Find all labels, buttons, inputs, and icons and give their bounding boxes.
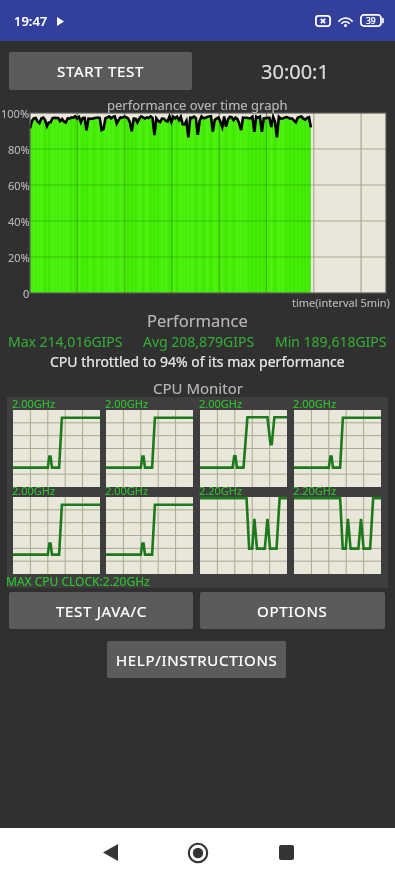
staticText: 2.00GHz (293, 396, 337, 411)
staticText: Max 214,016GIPS (8, 332, 123, 351)
staticText: 2.00GHz (199, 396, 243, 411)
staticText: Min 189,618GIPS (275, 332, 387, 351)
staticText: 80% (8, 142, 30, 157)
staticText: 100% (1, 106, 30, 121)
staticText: 20% (8, 250, 30, 265)
staticText: MAX CPU CLOCK:2.20GHz (6, 573, 150, 589)
button[interactable]: TEST JAVA/C (9, 592, 193, 629)
staticText: 19:47 (14, 12, 48, 30)
staticText: START TEST (57, 61, 144, 81)
staticText: 60% (8, 178, 30, 193)
staticText: 39 (366, 15, 376, 27)
button[interactable]: Home (154, 828, 242, 877)
staticText: 2.00GHz (12, 396, 56, 411)
staticText: 2.20GHz (199, 483, 243, 498)
button[interactable]: Recent apps (242, 828, 330, 877)
button[interactable]: Back (66, 828, 154, 877)
staticText: OPTIONS (257, 601, 328, 621)
button[interactable]: OPTIONS (200, 592, 385, 629)
staticText: 2.00GHz (12, 483, 56, 498)
staticText: CPU Monitor (153, 378, 243, 396)
staticText: HELP/INSTRUCTIONS (116, 650, 278, 670)
staticText: Performance (147, 309, 248, 331)
staticText: 40% (8, 214, 30, 229)
staticText: TEST JAVA/C (56, 601, 147, 621)
staticText: 30:00:1 (261, 58, 329, 85)
staticText: CPU throttled to 94% of its max performa… (50, 352, 345, 371)
staticText: 2.00GHz (105, 483, 149, 498)
staticText: time(interval 5min) (292, 295, 390, 310)
staticText: 2.20GHz (293, 483, 337, 498)
staticText: 0 (23, 286, 30, 301)
staticText: performance over time graph (107, 96, 288, 114)
button[interactable]: START TEST (9, 52, 192, 90)
staticText: 2.00GHz (105, 396, 149, 411)
button[interactable]: HELP/INSTRUCTIONS (107, 641, 286, 678)
staticText: Avg 208,879GIPS (143, 332, 255, 351)
